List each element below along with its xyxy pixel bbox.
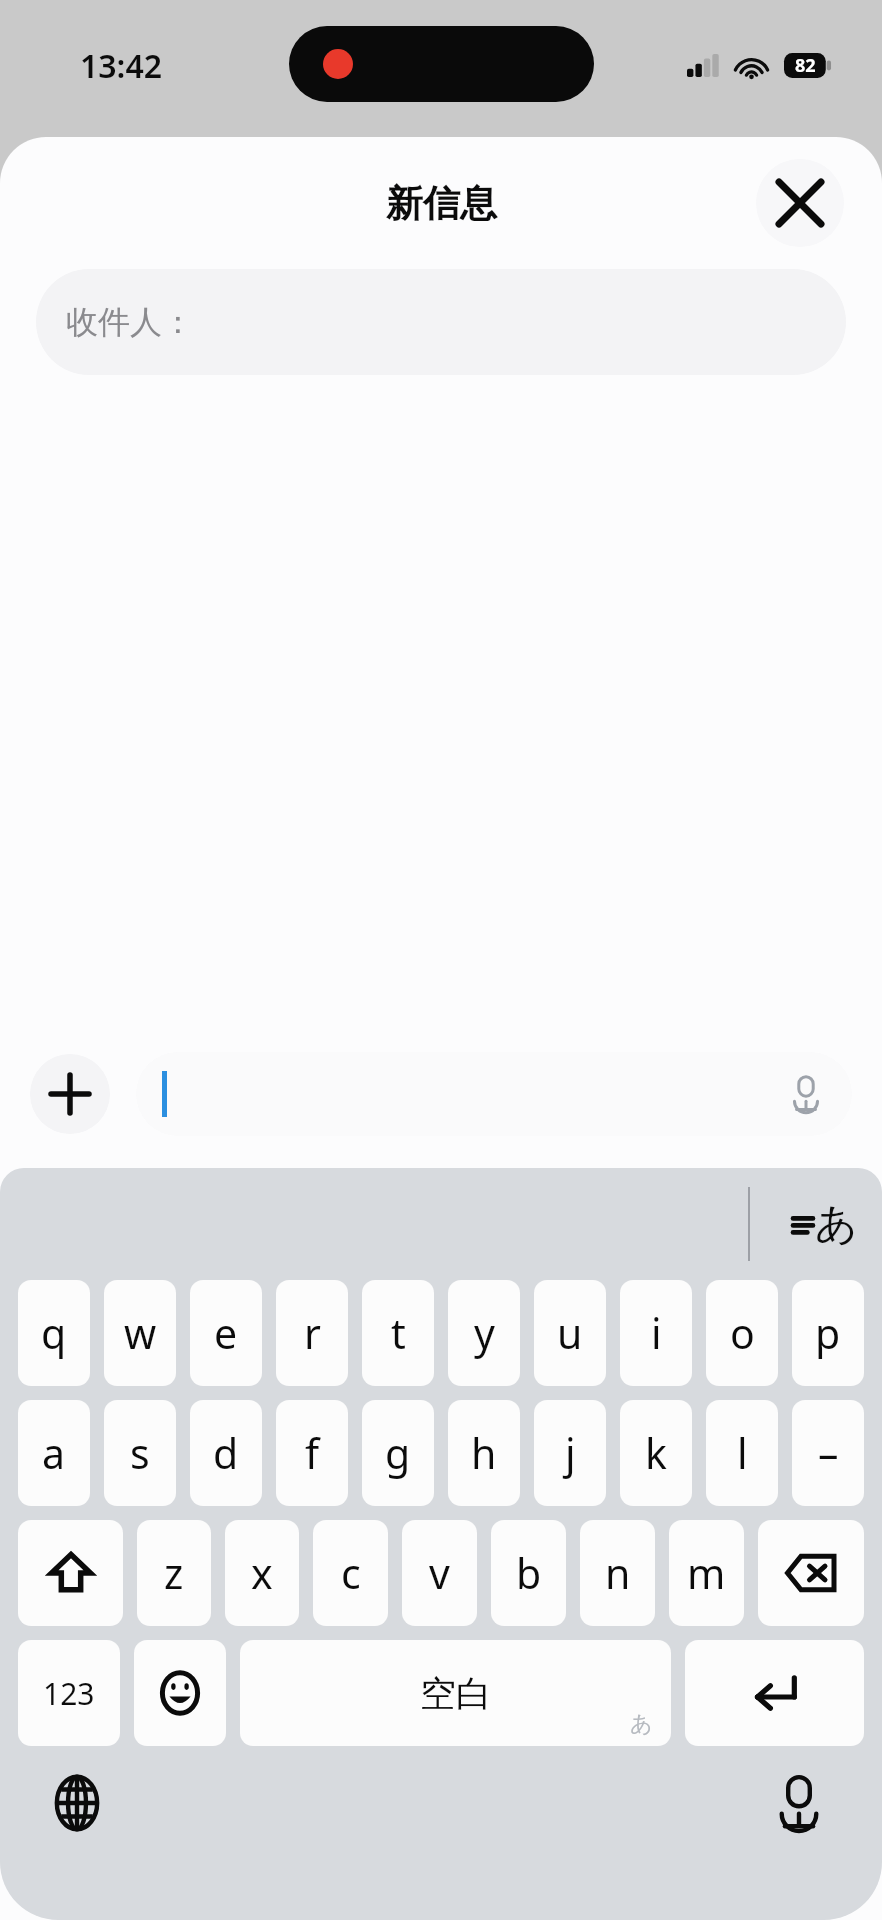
button[interactable]: r — [276, 1280, 348, 1386]
staticText: j — [565, 1425, 576, 1481]
button[interactable]: i — [620, 1280, 692, 1386]
staticText: 空白 — [420, 1671, 492, 1716]
staticText: 收件人： — [66, 302, 194, 342]
button[interactable]: e — [190, 1280, 262, 1386]
button[interactable]: Backspace — [758, 1520, 864, 1626]
staticText: x — [251, 1545, 273, 1601]
staticText: y — [474, 1305, 495, 1361]
staticText: t — [391, 1305, 406, 1361]
button[interactable]: Dictate — [136, 1052, 852, 1136]
button[interactable]: j — [534, 1400, 606, 1506]
button[interactable]: t — [362, 1280, 434, 1386]
staticText: q — [41, 1305, 67, 1361]
button[interactable]: o — [706, 1280, 778, 1386]
staticText: c — [341, 1545, 361, 1601]
staticText: a — [42, 1425, 66, 1481]
button[interactable]: h — [448, 1400, 520, 1506]
staticText: あ — [815, 1198, 858, 1251]
button[interactable]: k — [620, 1400, 692, 1506]
staticText: – — [818, 1425, 839, 1481]
staticText: m — [687, 1545, 726, 1601]
button[interactable]: f — [276, 1400, 348, 1506]
staticText: w — [124, 1305, 157, 1361]
button[interactable]: l — [706, 1400, 778, 1506]
staticText: p — [815, 1305, 841, 1361]
staticText: 123 — [43, 1673, 95, 1714]
button[interactable]: Return — [685, 1640, 864, 1746]
button[interactable]: d — [190, 1400, 262, 1506]
button[interactable]: Input mode — [793, 1168, 858, 1280]
staticText: i — [651, 1305, 662, 1361]
button[interactable]: x — [225, 1520, 299, 1626]
staticText: e — [214, 1305, 238, 1361]
button[interactable]: Dictation — [764, 1768, 834, 1838]
staticText: u — [557, 1305, 583, 1361]
button[interactable]: Add attachment — [30, 1054, 110, 1134]
staticText: g — [385, 1425, 411, 1481]
button[interactable]: u — [534, 1280, 606, 1386]
staticText: d — [213, 1425, 239, 1481]
button[interactable]: w — [104, 1280, 176, 1386]
button[interactable]: b — [491, 1520, 566, 1626]
staticText: f — [305, 1425, 320, 1481]
button[interactable]: Close — [756, 159, 844, 247]
button[interactable]: 123 — [18, 1640, 120, 1746]
staticText: r — [304, 1305, 321, 1361]
staticText: h — [471, 1425, 497, 1481]
staticText: 82 — [795, 53, 816, 78]
button[interactable]: q — [18, 1280, 90, 1386]
button[interactable]: Dictate — [784, 1072, 828, 1116]
staticText: l — [737, 1425, 748, 1481]
staticText: s — [130, 1425, 150, 1481]
button[interactable]: z — [137, 1520, 211, 1626]
staticText: 新信息 — [386, 180, 497, 227]
button[interactable]: Emoji — [134, 1640, 226, 1746]
staticText: b — [516, 1545, 542, 1601]
button[interactable]: n — [580, 1520, 655, 1626]
staticText: 13:42 — [80, 44, 163, 88]
button[interactable]: – — [792, 1400, 864, 1506]
button[interactable]: a — [18, 1400, 90, 1506]
button[interactable]: p — [792, 1280, 864, 1386]
button[interactable]: s — [104, 1400, 176, 1506]
button[interactable]: g — [362, 1400, 434, 1506]
button[interactable]: y — [448, 1280, 520, 1386]
button[interactable]: v — [402, 1520, 477, 1626]
button[interactable]: 空白 — [240, 1640, 671, 1746]
button[interactable]: Shift — [18, 1520, 123, 1626]
staticText: z — [164, 1545, 184, 1601]
staticText: n — [605, 1545, 631, 1601]
staticText: o — [730, 1305, 755, 1361]
button[interactable]: Switch keyboard — [42, 1768, 112, 1838]
button[interactable]: m — [669, 1520, 744, 1626]
staticText: v — [429, 1545, 450, 1601]
staticText: あ — [630, 1710, 653, 1738]
button[interactable]: 收件人： — [36, 269, 846, 375]
button[interactable]: c — [313, 1520, 388, 1626]
staticText: k — [645, 1425, 667, 1481]
